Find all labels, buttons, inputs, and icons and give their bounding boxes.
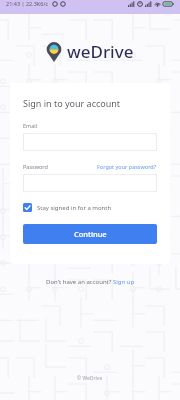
button[interactable] [23,133,157,151]
staticText: Password [23,163,48,170]
staticText: Forgot your password? [97,163,157,170]
button[interactable]: Continue [23,224,157,244]
staticText: © WeDrive [77,375,103,382]
button[interactable] [23,174,157,192]
staticText: 21:43 | 22.3K6/c [6,0,49,7]
button[interactable]: Forgot your password? [97,163,157,170]
staticText: Don't have an account? [46,278,113,286]
staticText: weDrive [67,40,134,63]
staticText: Sign up [113,278,135,286]
staticText: Sign in to your account [23,97,121,109]
button[interactable]: Stay signed in for a month [23,203,112,212]
button[interactable]: Sign up [113,278,135,286]
staticText: Continue [74,229,107,239]
staticText: Stay signed in for a month [37,204,112,212]
staticText: Email [23,122,38,129]
